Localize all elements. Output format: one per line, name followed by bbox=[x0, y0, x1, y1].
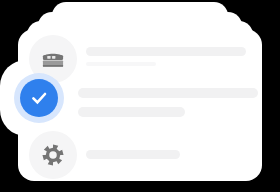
button[interactable]: Completed bbox=[14, 73, 64, 123]
button[interactable]: Settings bbox=[29, 131, 77, 179]
button[interactable]: Appliance bbox=[29, 35, 77, 83]
